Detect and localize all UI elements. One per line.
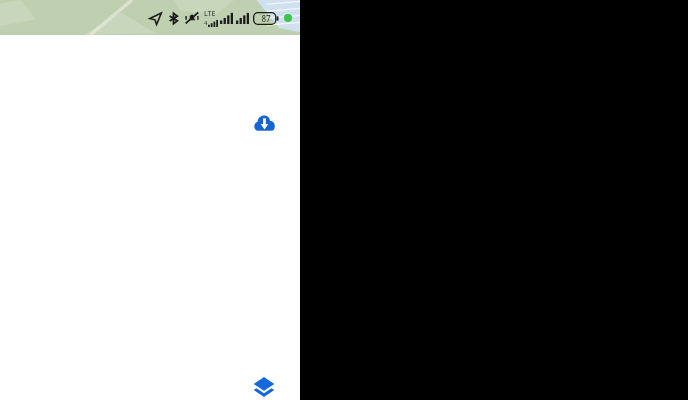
staticText: 4: [204, 19, 208, 27]
staticText: LTE: [204, 9, 216, 19]
button[interactable]: Download offline map: [243, 101, 285, 143]
staticText: 87: [261, 13, 271, 24]
button[interactable]: Map layers: [243, 366, 285, 400]
